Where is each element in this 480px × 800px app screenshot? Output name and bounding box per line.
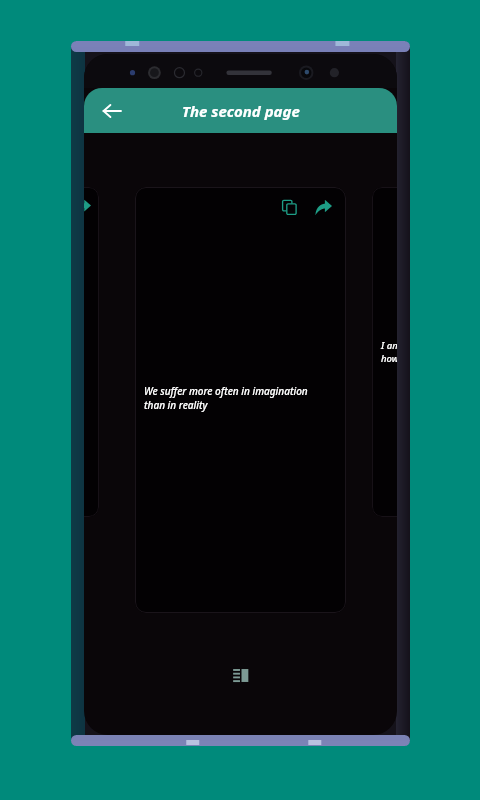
button[interactable]: Copy xyxy=(135,187,346,613)
staticText: I am not afraid of storms, for I am lear… xyxy=(381,339,397,365)
button[interactable]: I am not afraid of storms, for I am lear… xyxy=(372,187,397,517)
button[interactable]: Share xyxy=(310,194,336,220)
button[interactable]: Back xyxy=(94,93,130,129)
button[interactable]: Recents xyxy=(224,658,258,692)
button[interactable]: It is not the man who has too little, bu… xyxy=(84,187,99,517)
button[interactable]: Copy xyxy=(276,194,302,220)
staticText: We suffer more often in imagination than… xyxy=(144,384,326,412)
staticText: The second page xyxy=(182,101,300,121)
